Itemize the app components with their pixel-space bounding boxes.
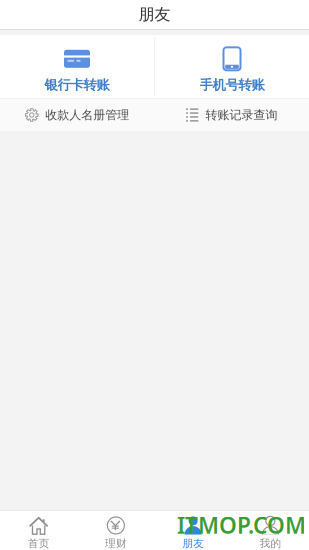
staticText: ITMOP.COM <box>177 510 306 540</box>
button[interactable]: 银行卡转账 <box>0 32 154 101</box>
button[interactable]: 朋友 <box>154 509 232 550</box>
staticText: 收款人名册管理 <box>45 108 129 122</box>
button[interactable]: 我的 <box>232 509 309 550</box>
staticText: 转账记录查询 <box>205 108 277 122</box>
button[interactable]: 收款人名册管理 <box>0 100 154 130</box>
staticText: 朋友 <box>138 5 170 24</box>
button[interactable]: 理财 <box>77 509 154 550</box>
staticText: 理财 <box>105 537 127 550</box>
staticText: 朋友 <box>182 537 204 550</box>
staticText: 首页 <box>28 537 50 550</box>
staticText: 手机号转账 <box>199 77 264 93</box>
staticText: 银行卡转账 <box>44 77 109 93</box>
button[interactable]: 手机号转账 <box>155 32 309 101</box>
button[interactable]: 转账记录查询 <box>154 100 309 130</box>
staticText: 我的 <box>259 537 281 550</box>
button[interactable]: 首页 <box>0 509 77 550</box>
